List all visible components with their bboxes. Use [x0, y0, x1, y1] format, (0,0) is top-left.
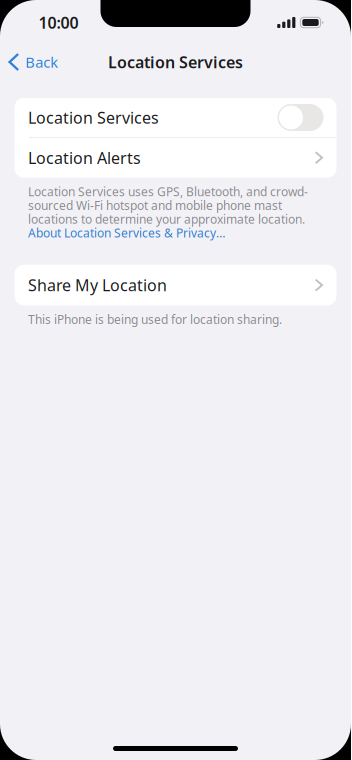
- staticText: 10:00: [38, 12, 78, 33]
- button[interactable]: Location Alerts: [14, 138, 336, 178]
- staticText: Location Services: [28, 107, 159, 128]
- button[interactable]: Back: [0, 43, 67, 81]
- staticText: About Location Services & Privacy…: [28, 225, 225, 241]
- staticText: This iPhone is being used for location s…: [28, 311, 282, 327]
- staticText: Location Alerts: [28, 147, 141, 168]
- staticText: locations to determine your approximate …: [28, 211, 305, 227]
- staticText: Location Services uses GPS, Bluetooth, a…: [28, 184, 308, 200]
- staticText: Share My Location: [28, 274, 167, 296]
- staticText: sourced Wi-Fi hotspot and mobile phone m…: [28, 197, 282, 213]
- staticText: Back: [25, 52, 58, 72]
- button[interactable]: Location Services: [14, 98, 336, 137]
- staticText: Location Services: [108, 51, 243, 73]
- button[interactable]: About Location Services & Privacy…: [28, 225, 337, 241]
- button[interactable]: Share My Location: [14, 265, 336, 305]
